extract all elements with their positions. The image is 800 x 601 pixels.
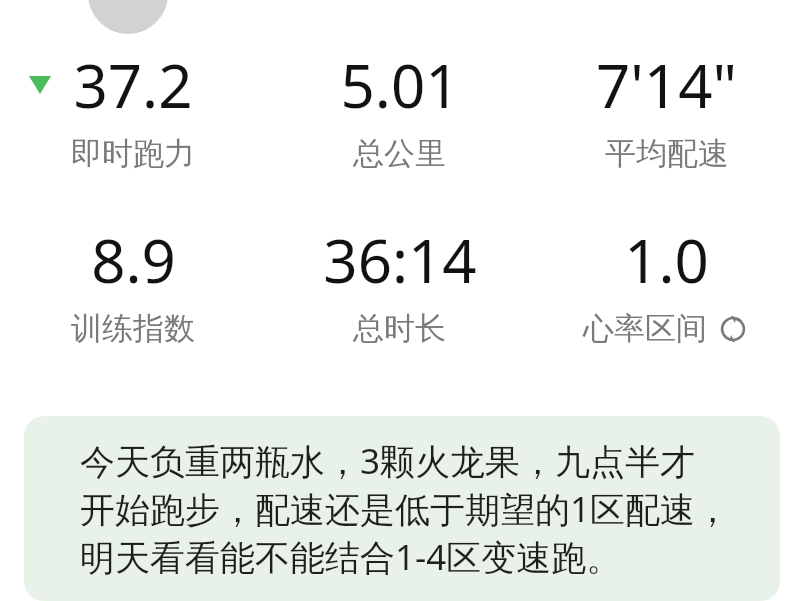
button[interactable]: 37.2 [0,44,266,173]
staticText: 1.0 [624,219,709,301]
button[interactable]: 今天负重两瓶水，3颗火龙果，九点半才 [24,416,780,601]
button[interactable]: 1.0 [533,219,800,348]
button[interactable]: 8.9 [0,219,266,348]
staticText: 开始跑步，配速还是低于期望的1区配速， [80,485,731,533]
staticText: 平均配速 [605,134,729,173]
staticText: 5.01 [340,44,460,126]
staticText: 即时跑力 [71,134,195,173]
staticText: 总时长 [353,309,446,348]
button[interactable]: 36:14 [266,219,533,348]
staticText: 训练指数 [71,309,195,348]
staticText: 36:14 [323,219,477,301]
staticText: 8.9 [91,219,176,301]
button[interactable]: 7'14" [533,44,800,173]
staticText: 心率区间 [583,309,707,348]
button[interactable]: Refresh [716,312,750,346]
button[interactable]: 5.01 [266,44,533,173]
staticText: 总公里 [353,134,446,173]
staticText: 今天负重两瓶水，3颗火龙果，九点半才 [80,437,696,485]
staticText: 7'14" [596,44,737,126]
staticText: 明天看看能不能结合1-4区变速跑。 [80,533,622,581]
staticText: 37.2 [73,44,193,126]
